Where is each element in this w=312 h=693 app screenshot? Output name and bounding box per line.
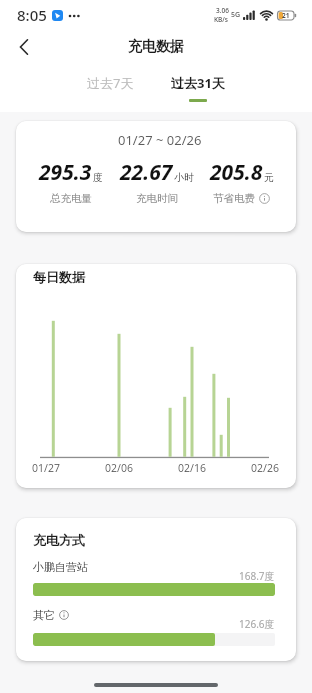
button[interactable] [8, 31, 40, 63]
button[interactable] [59, 610, 69, 620]
staticText: 8:05 [17, 5, 47, 25]
staticText: 过去31天 [171, 74, 225, 92]
staticText: 小鹏自营站 [33, 560, 88, 574]
staticText: 度 [93, 171, 103, 184]
staticText: 01/27 ~ 02/26 [118, 131, 202, 149]
staticText: 充电时间 [136, 192, 178, 205]
staticText: 295.3 [39, 158, 92, 187]
staticText: 02/16 [178, 461, 206, 475]
staticText: 过去7天 [87, 74, 134, 92]
staticText: 节省电费 [213, 192, 255, 205]
staticText: 3.06 [216, 6, 229, 15]
staticText: 205.8 [210, 158, 263, 187]
staticText: 02/26 [251, 461, 279, 475]
staticText: 02/06 [105, 461, 133, 475]
staticText: 21 [282, 11, 290, 20]
button[interactable]: 过去7天 [66, 71, 154, 111]
staticText: 168.7度 [239, 569, 275, 583]
staticText: 元 [264, 171, 274, 184]
staticText: 01/27 [32, 461, 60, 475]
button[interactable]: 过去31天 [154, 71, 242, 111]
staticText: 总充电量 [50, 192, 92, 205]
staticText: 其它 [33, 608, 55, 622]
staticText: 每日数据 [33, 269, 85, 285]
button[interactable] [259, 193, 270, 204]
staticText: KB/s [214, 15, 229, 24]
staticText: 5G [231, 10, 241, 20]
staticText: 126.6度 [239, 617, 275, 631]
staticText: 22.67 [120, 158, 173, 187]
staticText: 充电方式 [33, 532, 85, 548]
staticText: 小时 [174, 171, 194, 184]
staticText: 充电数据 [128, 38, 184, 56]
